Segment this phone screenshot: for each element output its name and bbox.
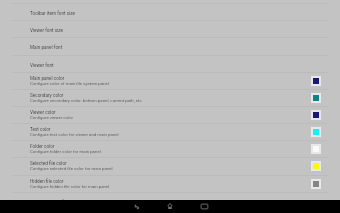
staticText: Configure selected file color for main p… <box>30 166 113 171</box>
staticText: Configure color of main file system pane… <box>30 81 109 86</box>
staticText: Configure text color for viewer and main… <box>30 132 119 137</box>
button[interactable]: Home <box>159 200 181 212</box>
staticText: Configure hidden file color for main pan… <box>30 184 110 189</box>
button[interactable]: Secondary color <box>0 89 340 106</box>
button[interactable]: Viewer font <box>0 55 340 72</box>
button[interactable]: Toolbar item font size <box>0 3 340 20</box>
staticText: Secondary color <box>30 93 64 98</box>
button[interactable]: Viewer font size <box>0 20 340 37</box>
staticText: Hidden file color <box>30 179 64 184</box>
button[interactable]: Recents <box>193 200 215 212</box>
staticText: Toolbar item font size <box>30 11 75 16</box>
staticText: Selected file color <box>30 161 67 166</box>
staticText: Configure viewer color <box>30 115 74 120</box>
staticText: Folder color <box>30 144 55 149</box>
staticText: Viewer font size <box>30 28 63 33</box>
staticText: Main panel color <box>30 76 65 81</box>
button[interactable]: Main panel color <box>0 72 340 89</box>
staticText: Configure folder color for main panel <box>30 149 101 154</box>
button[interactable]: Text color <box>0 123 340 140</box>
button[interactable]: Viewer color <box>0 106 340 123</box>
button[interactable]: Folder color <box>0 140 340 157</box>
button[interactable]: Main panel font <box>0 37 340 54</box>
staticText: Main panel font <box>30 45 63 50</box>
button[interactable]: Selected file color <box>0 157 340 174</box>
button[interactable]: Hidden file color <box>0 175 340 192</box>
staticText: Configure secondary color: bottom panel,… <box>30 98 142 103</box>
staticText: Text color <box>30 127 51 132</box>
button[interactable]: Back <box>125 200 147 212</box>
staticText: Viewer color <box>30 110 56 115</box>
staticText: Viewer font <box>30 63 54 68</box>
